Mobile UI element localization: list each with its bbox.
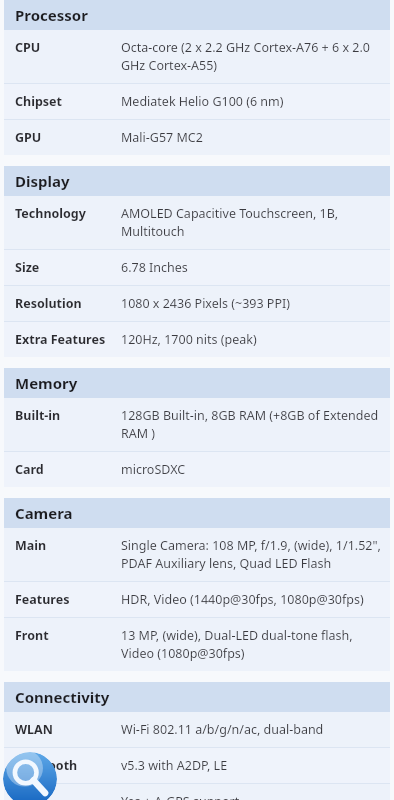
- staticText: HDR, Video (1440p@30fps, 1080p@30fps): [121, 591, 364, 608]
- button[interactable]: Camera: [4, 498, 390, 528]
- staticText: Wi-Fi 802.11 a/b/g/n/ac, dual-band: [121, 721, 324, 738]
- staticText: WLAN: [15, 721, 53, 738]
- staticText: CPU: [15, 39, 41, 56]
- staticText: v5.3 with A2DP, LE: [121, 757, 228, 774]
- button[interactable]: Main: [4, 528, 390, 581]
- button[interactable]: GPS: [4, 784, 390, 800]
- button[interactable]: GPU: [4, 120, 390, 155]
- staticText: GPU: [15, 129, 42, 146]
- staticText: Built-in: [15, 407, 61, 424]
- button[interactable]: Resolution: [4, 286, 390, 321]
- staticText: microSDXC: [121, 461, 186, 478]
- staticText: 6.78 Inches: [121, 259, 188, 276]
- staticText: Chipset: [15, 93, 62, 110]
- button[interactable]: Connectivity: [4, 682, 390, 712]
- button[interactable]: Features: [4, 582, 390, 617]
- button[interactable]: WLAN: [4, 712, 390, 747]
- button[interactable]: Built-in: [4, 398, 390, 451]
- button[interactable]: CPU: [4, 30, 390, 83]
- button[interactable]: Extra Features: [4, 322, 390, 357]
- staticText: Display: [15, 171, 70, 191]
- staticText: Extra Features: [15, 331, 106, 348]
- staticText: Resolution: [15, 295, 82, 312]
- staticText: Front: [15, 627, 49, 644]
- staticText: Memory: [15, 373, 78, 393]
- staticText: Bluetooth: [15, 757, 78, 774]
- button[interactable]: Chipset: [4, 84, 390, 119]
- button[interactable]: Card: [4, 452, 390, 487]
- staticText: 13 MP, (wide), Dual-LED dual-tone flash,…: [121, 627, 382, 662]
- button[interactable]: Processor: [4, 0, 390, 30]
- staticText: Mali-G57 MC2: [121, 129, 203, 146]
- staticText: Connectivity: [15, 687, 110, 707]
- button[interactable]: Technology: [4, 196, 390, 249]
- staticText: 120Hz, 1700 nits (peak): [121, 331, 257, 348]
- staticText: Processor: [15, 5, 88, 25]
- button[interactable]: Front: [4, 618, 390, 671]
- staticText: AMOLED Capacitive Touchscreen, 1B, Multi…: [121, 205, 382, 240]
- staticText: Mediatek Helio G100 (6 nm): [121, 93, 284, 110]
- staticText: Single Camera: 108 MP, f/1.9, (wide), 1/…: [121, 537, 382, 572]
- staticText: 1080 x 2436 Pixels (~393 PPI): [121, 295, 290, 312]
- staticText: Card: [15, 461, 44, 478]
- button[interactable]: Size: [4, 250, 390, 285]
- staticText: Technology: [15, 205, 86, 222]
- staticText: Camera: [15, 503, 73, 523]
- button[interactable]: Display: [4, 166, 390, 196]
- button[interactable]: Bluetooth: [4, 748, 390, 783]
- staticText: Main: [15, 537, 47, 554]
- button[interactable]: Memory: [4, 368, 390, 398]
- staticText: Octa-core (2 x 2.2 GHz Cortex-A76 + 6 x …: [121, 39, 382, 74]
- staticText: 128GB Built-in, 8GB RAM (+8GB of Extende…: [121, 407, 382, 442]
- staticText: Features: [15, 591, 70, 608]
- staticText: Size: [15, 259, 40, 276]
- staticText: Yes + A-GPS support: [121, 793, 240, 800]
- button[interactable]: Search: [3, 752, 57, 800]
